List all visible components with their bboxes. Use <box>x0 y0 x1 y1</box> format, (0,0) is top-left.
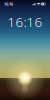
staticText: 16:16 <box>4 1 13 7</box>
staticText: 16:16 <box>7 13 42 31</box>
